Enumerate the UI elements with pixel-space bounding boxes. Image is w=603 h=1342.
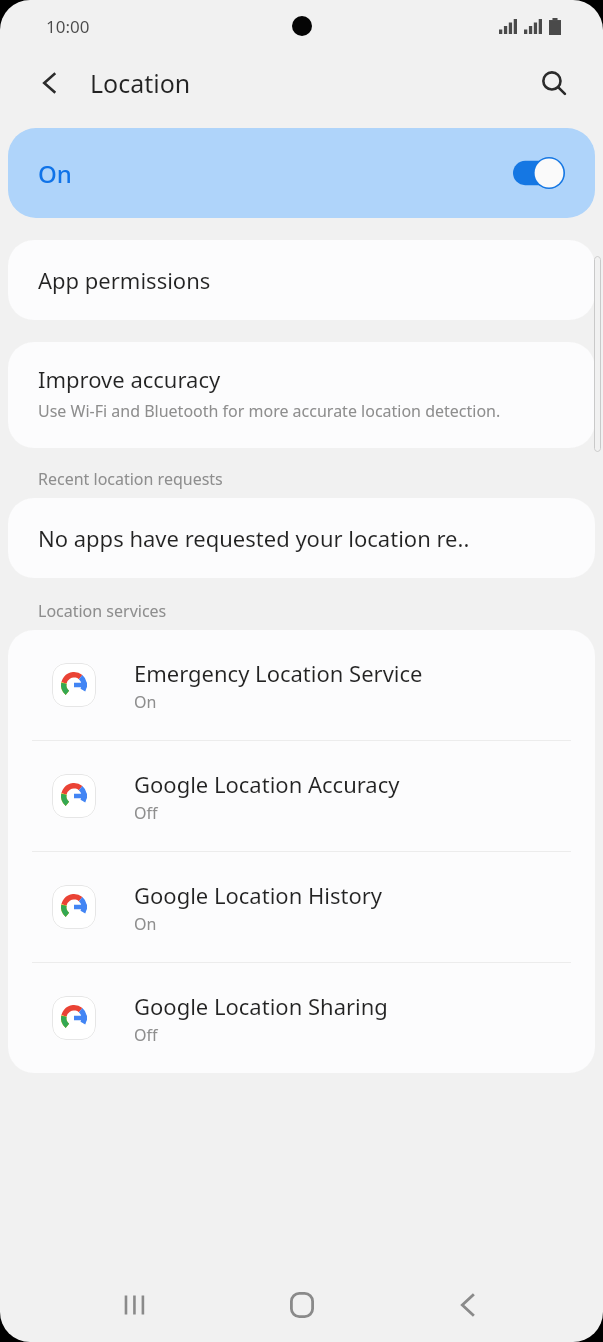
button[interactable]: Google Location Accuracy xyxy=(8,741,595,851)
button[interactable]: Google Location Sharing xyxy=(8,963,595,1073)
button[interactable]: App permissions xyxy=(8,240,595,320)
staticText: On xyxy=(134,691,157,713)
staticText: No apps have requested your location re.… xyxy=(38,523,470,553)
staticText: Location services xyxy=(38,600,167,622)
staticText: Google Location Sharing xyxy=(134,991,388,1021)
staticText: Recent location requests xyxy=(38,468,223,490)
button[interactable]: Back xyxy=(436,1273,500,1337)
staticText: Emergency Location Service xyxy=(134,658,423,688)
button[interactable]: Google Location History xyxy=(8,852,595,962)
button[interactable]: Recent apps xyxy=(103,1273,167,1337)
button[interactable]: Emergency Location Service xyxy=(8,630,595,740)
staticText: App permissions xyxy=(38,265,211,295)
staticText: 10:00 xyxy=(46,15,90,38)
button[interactable]: Improve accuracy xyxy=(8,342,595,448)
staticText: Off xyxy=(134,1024,158,1046)
button[interactable]: Home xyxy=(270,1273,334,1337)
button[interactable]: Back xyxy=(28,61,72,105)
staticText: On xyxy=(134,913,157,935)
staticText: Google Location Accuracy xyxy=(134,769,400,799)
button[interactable]: Search xyxy=(531,60,577,106)
staticText: Off xyxy=(134,802,158,824)
button[interactable]: No apps have requested your location re.… xyxy=(8,498,595,578)
button[interactable]: On xyxy=(8,128,595,218)
staticText: Google Location History xyxy=(134,880,383,910)
staticText: Improve accuracy xyxy=(38,364,221,394)
staticText: On xyxy=(38,157,72,190)
staticText: Location xyxy=(90,66,191,100)
staticText: Use Wi-Fi and Bluetooth for more accurat… xyxy=(38,400,501,422)
